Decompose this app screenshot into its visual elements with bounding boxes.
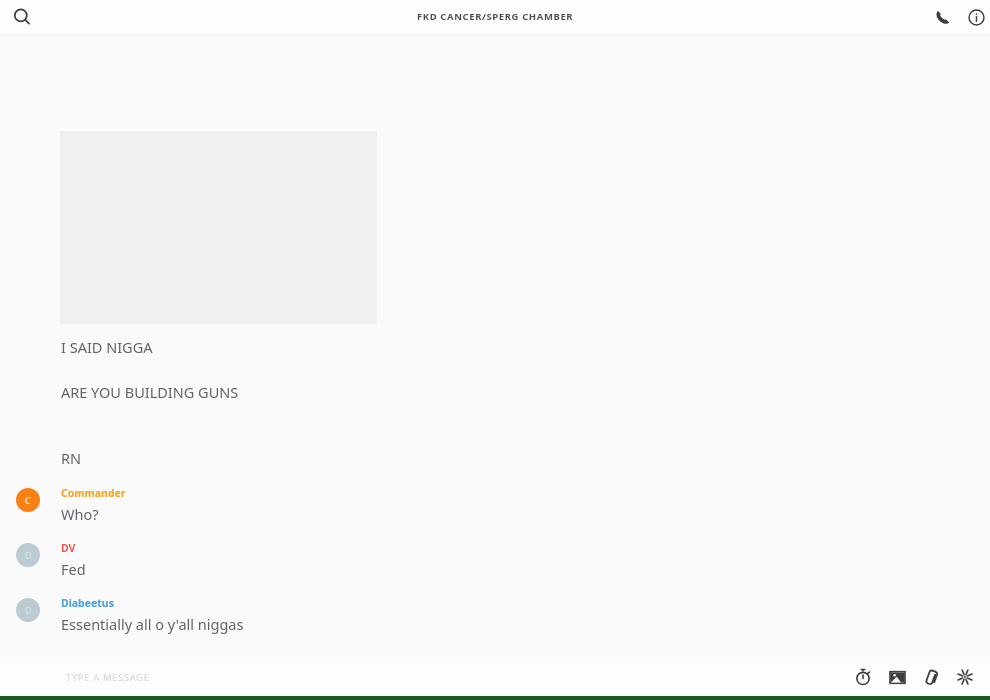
button[interactable]: D	[0, 596, 990, 634]
staticText: D	[25, 604, 32, 616]
staticText: Commander	[61, 486, 126, 500]
staticText: Essentially all o y'all niggas	[61, 614, 244, 634]
staticText: I SAID NIGGA	[61, 337, 153, 357]
button[interactable]: ARE YOU BUILDING GUNS	[0, 382, 990, 402]
button[interactable]: TYPE A MESSAGE	[66, 671, 150, 684]
button[interactable]: Info	[962, 3, 990, 31]
staticText: C	[25, 494, 31, 506]
button[interactable]: Timed message	[846, 660, 880, 694]
button[interactable]: Attach file	[914, 660, 948, 694]
button[interactable]: Effects	[948, 660, 982, 694]
staticText: Diabeetus	[61, 596, 114, 610]
staticText: DV	[61, 541, 76, 555]
staticText: D	[25, 549, 32, 561]
button[interactable]: Send photo	[880, 660, 914, 694]
button[interactable]: D	[0, 541, 990, 579]
button[interactable]: RN	[0, 448, 990, 468]
staticText: Who?	[61, 504, 99, 524]
staticText: ARE YOU BUILDING GUNS	[61, 382, 239, 402]
button[interactable]: Call	[928, 3, 956, 31]
staticText: FKD CANCER/SPERG CHAMBER	[417, 10, 574, 23]
staticText: RN	[61, 448, 82, 468]
button[interactable]: C	[0, 486, 990, 524]
button[interactable]: Search	[8, 3, 36, 31]
staticText: Fed	[61, 559, 86, 579]
button[interactable]: I SAID NIGGA	[0, 337, 990, 357]
